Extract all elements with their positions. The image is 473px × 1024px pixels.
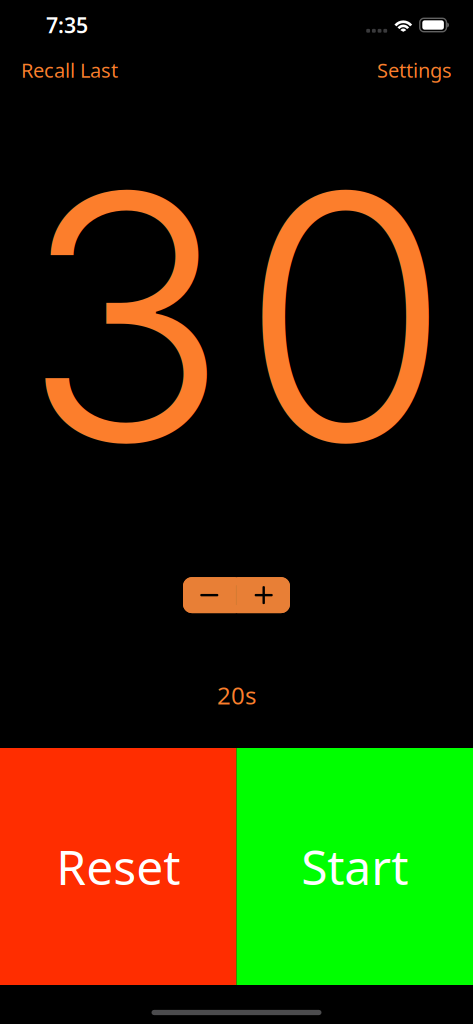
button[interactable]: Increase xyxy=(237,577,290,613)
button[interactable]: Settings xyxy=(373,49,456,91)
staticText: Recall Last xyxy=(21,57,118,83)
button[interactable]: Recall Last xyxy=(17,49,122,91)
staticText: Reset xyxy=(56,835,180,898)
staticText: Settings xyxy=(377,57,452,83)
button[interactable]: Decrease xyxy=(183,577,236,613)
button[interactable]: Reset xyxy=(0,748,236,985)
staticText: 20s xyxy=(217,679,256,711)
staticText: 0 xyxy=(240,111,450,523)
staticText: 7:35 xyxy=(46,11,88,39)
button[interactable]: Start xyxy=(236,748,473,985)
staticText: Start xyxy=(301,835,408,898)
staticText: 3 xyxy=(22,111,228,523)
